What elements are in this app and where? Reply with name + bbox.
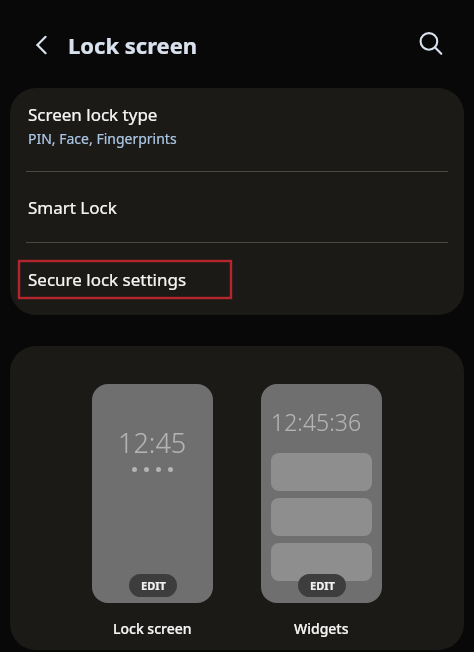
button[interactable]: Search	[409, 22, 453, 66]
button[interactable]: Smart Lock	[10, 172, 464, 242]
staticText: 12:45	[118, 424, 187, 461]
button[interactable]: Secure lock settings	[10, 243, 464, 315]
staticText: EDIT	[141, 578, 166, 593]
staticText: 12:45:36	[271, 406, 362, 437]
staticText: Screen lock type	[28, 103, 158, 126]
button[interactable]: EDIT	[129, 574, 177, 597]
button[interactable]: EDIT	[298, 574, 346, 597]
staticText: PIN, Face, Fingerprints	[28, 129, 177, 148]
button[interactable]: Screen lock type	[10, 88, 464, 171]
staticText: Secure lock settings	[28, 268, 187, 291]
staticText: EDIT	[310, 578, 335, 593]
staticText: Lock screen	[113, 619, 192, 638]
staticText: Widgets	[294, 619, 349, 638]
button[interactable]: 12:45	[92, 346, 213, 638]
button[interactable]: Back	[23, 26, 61, 64]
button[interactable]: 12:45:36	[261, 346, 382, 638]
staticText: Smart Lock	[28, 196, 117, 219]
staticText: Lock screen	[68, 30, 198, 60]
